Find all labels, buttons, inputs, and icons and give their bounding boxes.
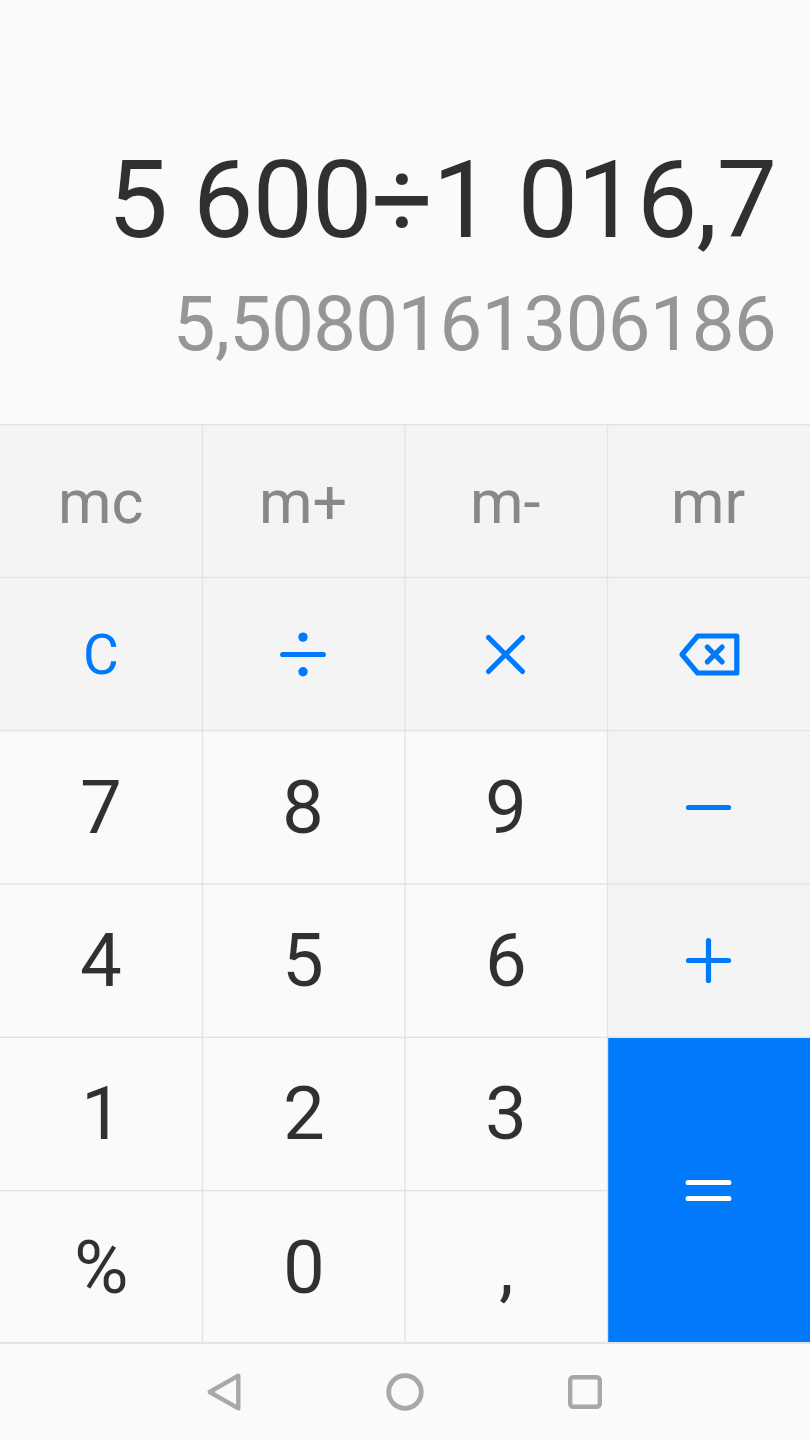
staticText: % xyxy=(74,1224,129,1311)
staticText: 9 xyxy=(485,764,527,851)
staticText: 0 xyxy=(283,1224,325,1311)
staticText: 5 600÷1 016,7 xyxy=(107,137,776,264)
staticText: , xyxy=(499,1224,514,1311)
button[interactable]: Backspace xyxy=(607,578,810,731)
staticText: 7 xyxy=(80,764,122,851)
button[interactable]: 3 xyxy=(405,1037,607,1190)
staticText: 1 xyxy=(81,1070,123,1157)
staticText: 8 xyxy=(282,764,324,851)
button[interactable]: mc xyxy=(0,424,202,578)
button[interactable]: C xyxy=(0,578,202,731)
button[interactable]: Plus xyxy=(607,884,810,1037)
staticText: mc xyxy=(58,466,144,537)
button[interactable]: 1 xyxy=(0,1037,203,1190)
button[interactable]: Equals xyxy=(607,1037,810,1344)
button[interactable]: Home xyxy=(357,1344,453,1440)
staticText: mr xyxy=(671,466,746,537)
button[interactable]: 0 xyxy=(203,1190,405,1344)
button[interactable]: % xyxy=(0,1190,203,1344)
button[interactable]: m+ xyxy=(202,424,404,578)
staticText: 6 xyxy=(485,917,527,1004)
staticText: C xyxy=(83,623,119,687)
button[interactable]: 8 xyxy=(202,731,404,884)
button[interactable]: 6 xyxy=(404,884,607,1037)
button[interactable]: 2 xyxy=(203,1037,405,1190)
button[interactable]: Minus xyxy=(607,731,810,884)
button[interactable]: m- xyxy=(404,424,607,578)
button[interactable]: 4 xyxy=(0,884,202,1037)
staticText: 2 xyxy=(283,1070,325,1157)
staticText: m- xyxy=(470,466,541,537)
button[interactable]: 5 xyxy=(202,884,404,1037)
button[interactable]: 7 xyxy=(0,731,202,884)
button[interactable]: 9 xyxy=(404,731,607,884)
button[interactable]: , xyxy=(405,1190,607,1344)
button[interactable]: Recents xyxy=(537,1344,633,1440)
staticText: 4 xyxy=(80,917,122,1004)
staticText: 5,5080161306186 xyxy=(172,279,776,368)
button[interactable]: Multiply xyxy=(404,578,607,731)
staticText: 5 xyxy=(282,917,324,1004)
button[interactable]: Divide xyxy=(202,578,404,731)
staticText: 3 xyxy=(485,1070,527,1157)
button[interactable]: Back xyxy=(176,1344,272,1440)
button[interactable]: mr xyxy=(607,424,810,578)
staticText: m+ xyxy=(259,466,348,537)
